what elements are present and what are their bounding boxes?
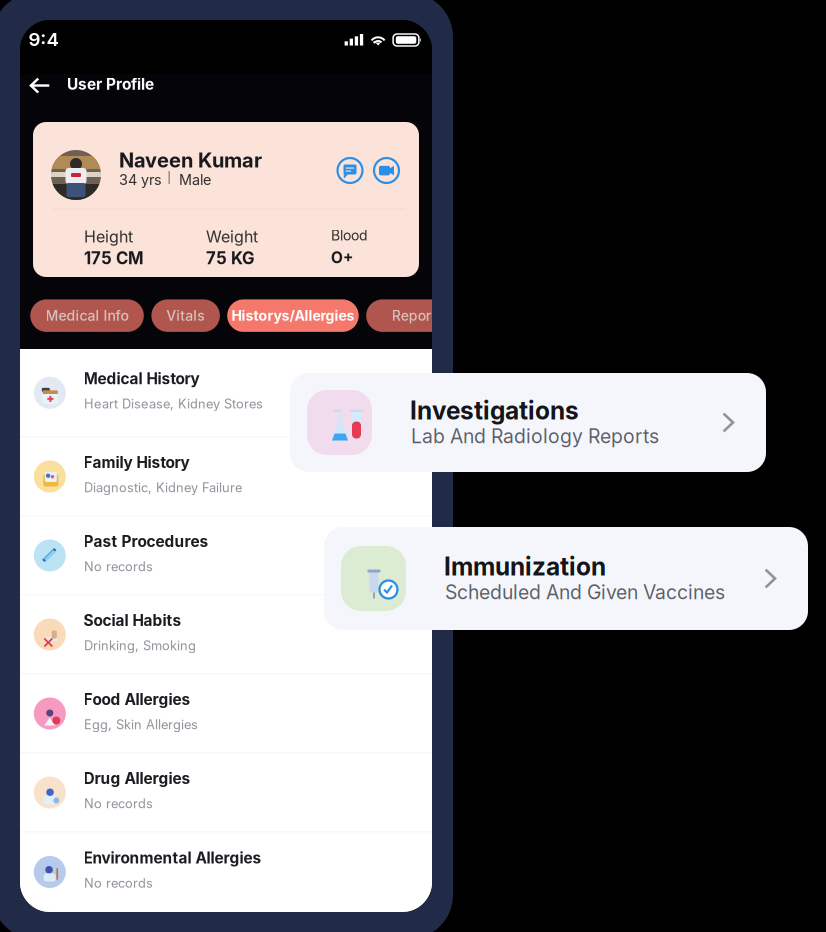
- staticText: Heart Disease, Kidney Stores: [84, 396, 263, 411]
- button[interactable]: Reports: [366, 299, 470, 332]
- staticText: Height: [84, 227, 133, 246]
- staticText: User Profile: [67, 75, 154, 94]
- staticText: O+: [331, 248, 353, 267]
- staticText: No records: [84, 875, 153, 891]
- staticText: Investigations: [410, 395, 579, 425]
- button[interactable]: Family History: [20, 437, 432, 515]
- staticText: Drug Allergies: [83, 769, 190, 788]
- staticText: Immunization: [444, 551, 606, 581]
- button[interactable]: Message: [337, 158, 362, 183]
- button[interactable]: Drug Allergies: [20, 753, 432, 831]
- staticText: Medical Info: [45, 307, 128, 324]
- button[interactable]: Investigations: [290, 373, 766, 472]
- button[interactable]: Food Allergies: [20, 674, 432, 752]
- staticText: Drinking, Smoking: [84, 638, 196, 653]
- staticText: Vitals: [166, 307, 205, 324]
- staticText: 75 KG: [206, 248, 255, 268]
- staticText: Male: [179, 171, 211, 188]
- staticText: Social Habits: [83, 611, 181, 630]
- button[interactable]: Medical History: [20, 349, 432, 436]
- button[interactable]: Medical Info: [30, 299, 144, 332]
- button[interactable]: Past Procedures: [20, 516, 432, 594]
- button[interactable]: Environmental Allergies: [20, 832, 432, 911]
- button[interactable]: Immunization: [324, 527, 808, 630]
- staticText: 9:4: [28, 28, 58, 51]
- staticText: 34 yrs: [119, 171, 162, 188]
- staticText: Diagnostic, Kidney Failure: [84, 480, 242, 495]
- staticText: Blood: [331, 227, 368, 244]
- staticText: No records: [84, 796, 153, 811]
- staticText: Environmental Allergies: [83, 849, 261, 867]
- staticText: Medical History: [83, 369, 199, 388]
- button[interactable]: Video call: [374, 158, 399, 183]
- staticText: 175 CM: [84, 248, 144, 268]
- staticText: Food Allergies: [83, 690, 190, 709]
- staticText: Egg, Skin Allergies: [84, 717, 198, 732]
- staticText: Naveen Kumar: [119, 148, 262, 172]
- staticText: Weight: [206, 227, 258, 246]
- staticText: No records: [84, 559, 153, 574]
- button[interactable]: Back: [25, 71, 55, 101]
- staticText: Past Procedures: [83, 532, 208, 551]
- staticText: Reports: [392, 307, 445, 324]
- button[interactable]: Vitals: [151, 299, 220, 332]
- staticText: Scheduled And Given Vaccines: [445, 580, 725, 604]
- button[interactable]: Social Habits: [20, 595, 432, 673]
- staticText: Lab And Radiology Reports: [411, 424, 659, 448]
- staticText: Historys/Allergies: [231, 307, 354, 324]
- button[interactable]: Historys/Allergies: [227, 299, 359, 332]
- staticText: Family History: [83, 453, 189, 472]
